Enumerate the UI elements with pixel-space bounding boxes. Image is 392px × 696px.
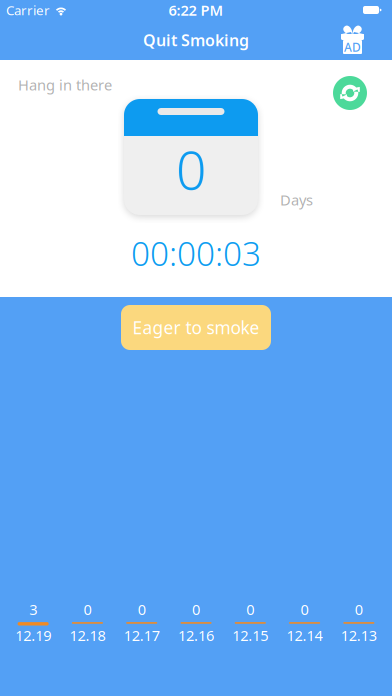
button[interactable]: Eager to smoke bbox=[121, 305, 271, 350]
staticText: 0 bbox=[355, 600, 363, 619]
staticText: 0 bbox=[301, 600, 309, 619]
staticText: 0 bbox=[176, 134, 206, 204]
staticText: 3 bbox=[29, 600, 37, 619]
staticText: 6:22 PM bbox=[168, 0, 223, 20]
button[interactable]: 3 bbox=[6, 600, 60, 645]
staticText: Carrier bbox=[6, 1, 50, 19]
button[interactable]: 0 bbox=[60, 600, 115, 645]
staticText: Days bbox=[280, 190, 313, 209]
staticText: 00:00:03 bbox=[131, 231, 261, 275]
button[interactable]: Advertisement bbox=[335, 23, 370, 56]
staticText: Quit Smoking bbox=[143, 29, 249, 51]
staticText: 0 bbox=[246, 600, 254, 619]
button[interactable]: 0 bbox=[223, 600, 277, 645]
button[interactable]: 0 bbox=[115, 600, 169, 645]
button[interactable]: 0 bbox=[277, 600, 332, 645]
button[interactable]: 0 bbox=[332, 600, 386, 645]
staticText: 0 bbox=[138, 600, 146, 619]
staticText: 12.18 bbox=[69, 625, 105, 645]
staticText: 12.15 bbox=[232, 625, 268, 645]
staticText: 0 bbox=[192, 600, 200, 619]
staticText: 0 bbox=[83, 600, 91, 619]
staticText: 12.17 bbox=[124, 625, 160, 645]
staticText: AD bbox=[344, 39, 361, 55]
staticText: Hang in there bbox=[18, 75, 112, 94]
button[interactable]: Reset counter bbox=[333, 76, 367, 110]
staticText: 12.13 bbox=[341, 625, 377, 645]
staticText: 12.14 bbox=[287, 625, 323, 645]
staticText: 12.19 bbox=[15, 625, 51, 645]
staticText: Eager to smoke bbox=[132, 316, 259, 339]
button[interactable]: 0 bbox=[169, 600, 223, 645]
staticText: 12.16 bbox=[178, 625, 214, 645]
